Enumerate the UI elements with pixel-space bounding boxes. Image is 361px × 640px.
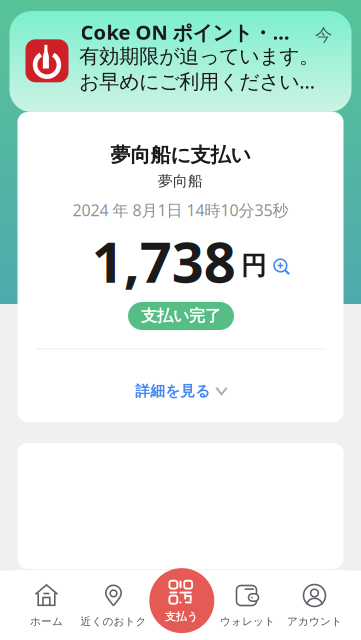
button[interactable]: 支払い完了	[128, 302, 234, 330]
staticText: 夢向船に支払い	[110, 143, 250, 167]
staticText: ウォレット	[220, 615, 275, 628]
button[interactable]: アカウント	[281, 570, 348, 640]
button[interactable]: ウォレット	[214, 570, 281, 640]
staticText: 近くのおトク	[80, 615, 146, 628]
button[interactable]: ホーム	[13, 570, 80, 640]
button[interactable]	[147, 570, 214, 640]
staticText: ホーム	[30, 615, 63, 628]
staticText: 2024 年 8月1日 14時10分35秒	[72, 199, 288, 221]
staticText: 円	[241, 250, 266, 281]
staticText: お早めにご利用ください…	[79, 68, 315, 94]
staticText: 夢向船	[158, 172, 203, 190]
staticText: Coke ON ポイント・…	[80, 19, 289, 45]
button[interactable]: 詳細を見る	[135, 369, 228, 413]
button[interactable]: 支払う	[149, 568, 214, 633]
staticText: 1,738	[92, 224, 236, 298]
staticText: 有効期限が迫っています。	[79, 44, 319, 69]
staticText: 詳細を見る	[135, 382, 210, 400]
staticText: 今	[315, 24, 332, 46]
staticText: アカウント	[287, 615, 342, 628]
staticText: 支払い完了	[141, 306, 221, 326]
staticText: 支払う	[165, 610, 198, 623]
button[interactable]: 近くのおトク	[80, 570, 147, 640]
